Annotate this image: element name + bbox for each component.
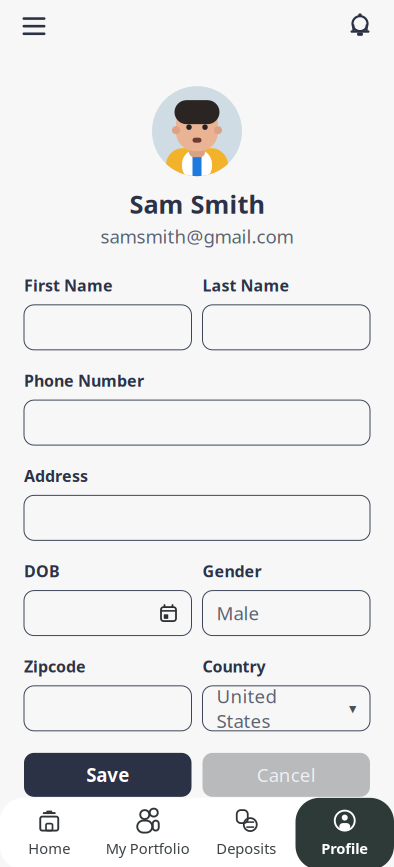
button[interactable]: Cancel <box>202 753 370 797</box>
staticText: Country <box>202 656 265 677</box>
button[interactable]: Save <box>24 753 191 797</box>
staticText: ▾ <box>349 700 356 717</box>
staticText: United States <box>216 683 276 733</box>
staticText: Male <box>216 601 259 625</box>
staticText: Profile <box>321 839 368 858</box>
staticText: ▾ <box>361 792 368 809</box>
staticText: Cancel <box>257 762 316 787</box>
staticText: Address <box>24 465 88 486</box>
staticText: My Portfolio <box>106 839 190 858</box>
button[interactable]: Deposits <box>197 798 295 867</box>
staticText: First Name <box>24 275 113 296</box>
staticText: Save <box>86 762 129 787</box>
staticText: Last Name <box>202 275 289 296</box>
button[interactable]: Profile <box>295 798 394 867</box>
staticText: DOB <box>24 560 60 581</box>
button[interactable]: Notifications <box>338 4 382 48</box>
staticText: Zipcode <box>24 656 86 677</box>
staticText: Deposits <box>216 839 276 858</box>
staticText: Gender <box>202 560 261 581</box>
button[interactable]: My Portfolio <box>98 798 197 867</box>
staticText: Home <box>28 839 70 858</box>
button[interactable]: Menu <box>12 4 56 48</box>
staticText: Phone Number <box>24 370 144 391</box>
button[interactable]: Home <box>0 798 98 867</box>
staticText: Sam Smith <box>129 187 264 221</box>
staticText: samsmith@gmail.com <box>100 224 293 249</box>
